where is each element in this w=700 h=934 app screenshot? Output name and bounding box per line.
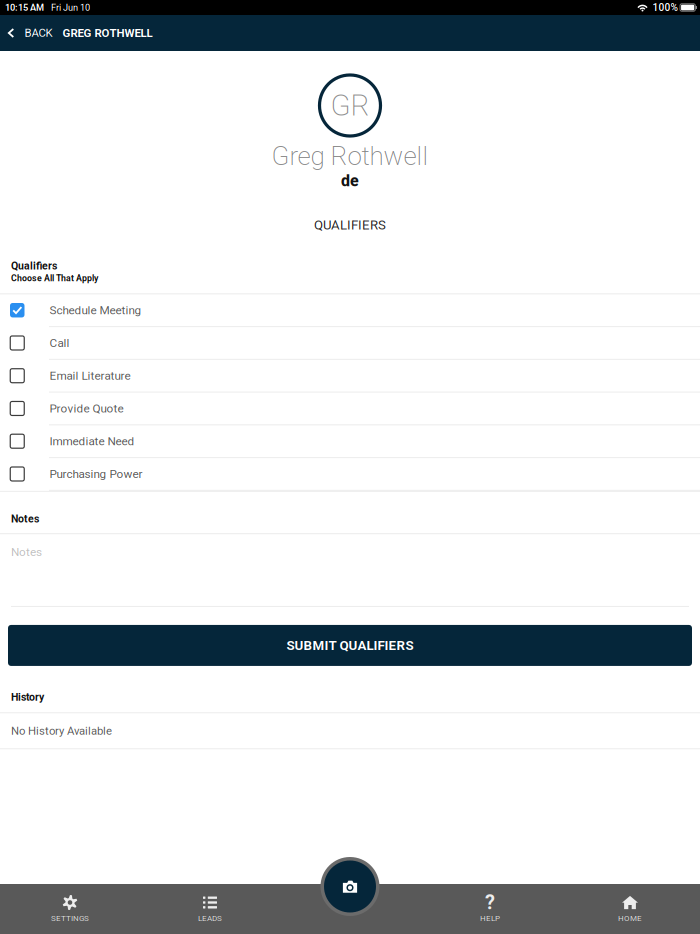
button[interactable]: BACK <box>0 15 61 51</box>
staticText: Choose All That Apply <box>11 273 98 283</box>
staticText: Fri Jun 10 <box>51 2 90 13</box>
staticText: LEADS <box>198 914 222 923</box>
staticText: HOME <box>618 914 642 923</box>
staticText: GREG ROTHWELL <box>62 26 152 40</box>
staticText: Notes <box>11 513 39 525</box>
button[interactable]: Email Literature <box>0 360 700 393</box>
staticText: Provide Quote <box>49 402 123 415</box>
staticText: 100% <box>652 2 677 13</box>
staticText: GR <box>330 88 369 123</box>
button[interactable]: SETTINGS <box>0 884 140 934</box>
staticText: Schedule Meeting <box>49 303 141 317</box>
staticText: SETTINGS <box>51 914 89 923</box>
button[interactable]: LEADS <box>140 884 280 934</box>
staticText: Purchasing Power <box>49 467 142 481</box>
button[interactable]: Schedule Meeting <box>0 294 700 327</box>
button[interactable]: Call <box>0 327 700 360</box>
staticText: Notes <box>11 545 42 559</box>
staticText: BACK <box>24 26 52 40</box>
staticText: Email Literature <box>49 369 130 383</box>
staticText: HELP <box>480 914 500 923</box>
staticText: SUBMIT QUALIFIERS <box>286 638 413 653</box>
staticText: History <box>11 691 44 703</box>
button[interactable]: Immediate Need <box>0 425 700 458</box>
staticText: Call <box>49 336 69 350</box>
staticText: Immediate Need <box>49 434 134 448</box>
button[interactable]: SUBMIT QUALIFIERS <box>8 625 692 666</box>
button[interactable]: HOME <box>560 884 700 934</box>
staticText: 10:15 AM <box>5 2 44 13</box>
staticText: de <box>341 171 359 190</box>
staticText: Qualifiers <box>11 260 57 272</box>
staticText: ? <box>485 891 495 914</box>
button[interactable]: Provide Quote <box>0 393 700 425</box>
button[interactable]: Purchasing Power <box>0 458 700 491</box>
button[interactable]: Take photo <box>320 857 379 916</box>
staticText: No History Available <box>11 724 112 737</box>
staticText: QUALIFIERS <box>314 217 386 233</box>
button[interactable]: ? <box>420 884 560 934</box>
staticText: Greg Rothwell <box>271 141 428 171</box>
